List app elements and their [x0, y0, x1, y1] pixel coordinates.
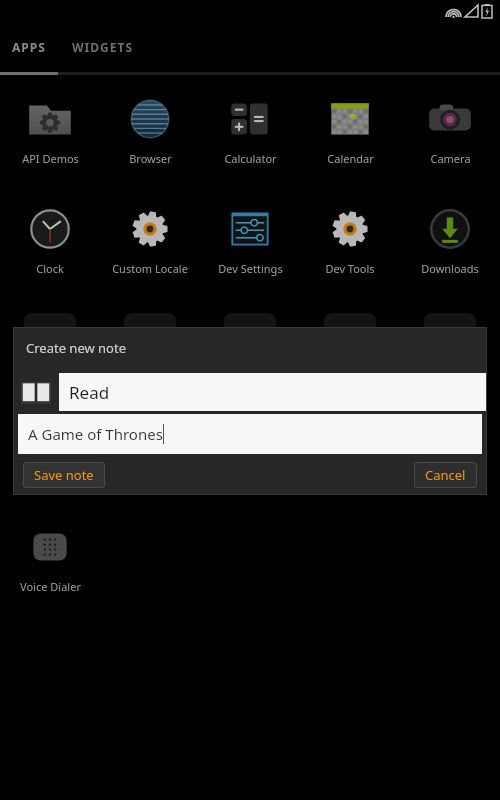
staticText: Calendar	[327, 151, 374, 166]
staticText: Dev Tools	[325, 261, 375, 276]
staticText: Voice Dialer	[20, 579, 81, 594]
staticText: Cancel	[425, 466, 466, 484]
button[interactable]: Browser	[100, 87, 200, 197]
button[interactable]: People	[0, 405, 100, 515]
button[interactable]: Read	[59, 373, 486, 411]
staticText: A Game of Thrones	[28, 424, 163, 444]
button[interactable]: Movie Studio	[200, 307, 300, 405]
button[interactable]: Phone	[100, 405, 200, 515]
staticText: Calculator	[224, 151, 277, 166]
button[interactable]: Downloads	[400, 197, 500, 307]
button[interactable]: Calculator	[200, 87, 300, 197]
button[interactable]: New Note	[400, 307, 500, 405]
staticText: Create new note	[26, 339, 126, 357]
button[interactable]: Superuser	[400, 405, 500, 515]
button[interactable]: Messaging	[100, 307, 200, 405]
button[interactable]: Calendar	[300, 87, 400, 197]
button[interactable]: Cancel	[414, 462, 477, 488]
button[interactable]: Dev Tools	[300, 197, 400, 307]
button[interactable]: Book icon	[13, 373, 59, 411]
staticText: Save note	[34, 466, 94, 484]
button[interactable]: APPS	[0, 22, 58, 72]
staticText: Superuser	[423, 469, 477, 484]
staticText: Messaging	[122, 371, 179, 386]
button[interactable]: Mentalist	[0, 307, 100, 405]
staticText: WIDGETS	[72, 39, 134, 55]
staticText: Camera	[430, 151, 471, 166]
button[interactable]: Dev Settings	[200, 197, 300, 307]
button[interactable]: Save note	[23, 462, 105, 488]
button[interactable]: Camera	[400, 87, 500, 197]
button[interactable]: API Demos	[0, 87, 100, 197]
button[interactable]: Music	[300, 307, 400, 405]
staticText: Mentalist	[26, 371, 75, 386]
staticText: New Note	[424, 371, 476, 386]
button[interactable]: Clock	[0, 197, 100, 307]
button[interactable]: Settings	[300, 405, 400, 515]
staticText: Dev Settings	[218, 261, 283, 276]
staticText: People	[32, 469, 68, 484]
staticText: APPS	[12, 39, 46, 55]
staticText: Clock	[36, 261, 64, 276]
button[interactable]: A Game of Thrones	[18, 414, 482, 454]
staticText: Music	[335, 371, 366, 386]
button[interactable]: WIDGETS	[58, 22, 148, 72]
staticText: Read	[69, 381, 110, 404]
staticText: Custom Locale	[112, 261, 188, 276]
staticText: API Demos	[22, 151, 79, 166]
button[interactable]: Search	[200, 405, 300, 515]
staticText: Downloads	[421, 261, 479, 276]
staticText: Movie Studio	[217, 371, 284, 386]
button[interactable]: Voice Dialer	[0, 515, 100, 625]
button[interactable]: Custom Locale	[100, 197, 200, 307]
staticText: Browser	[129, 151, 172, 166]
